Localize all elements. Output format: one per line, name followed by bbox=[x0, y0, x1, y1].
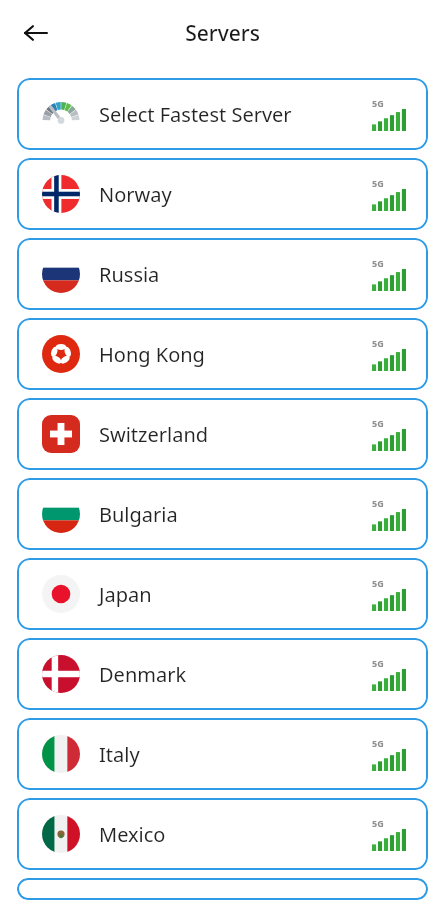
button[interactable]: Denmark bbox=[17, 638, 428, 710]
staticText: Select Fastest Server bbox=[99, 101, 372, 128]
staticText: Servers bbox=[185, 19, 260, 48]
button[interactable]: Italy bbox=[17, 718, 428, 790]
staticText: Hong Kong bbox=[99, 341, 372, 368]
staticText: 5G bbox=[372, 257, 384, 269]
staticText: 5G bbox=[372, 497, 384, 509]
button[interactable]: Russia bbox=[17, 238, 428, 310]
button[interactable]: Norway bbox=[17, 158, 428, 230]
staticText: Japan bbox=[99, 581, 372, 608]
staticText: 5G bbox=[372, 657, 384, 669]
staticText: Norway bbox=[99, 181, 372, 208]
button[interactable]: Select Fastest Server bbox=[17, 78, 428, 150]
staticText: Switzerland bbox=[99, 421, 372, 448]
staticText: 5G bbox=[372, 177, 384, 189]
button[interactable]: Japan bbox=[17, 558, 428, 630]
staticText: Mexico bbox=[99, 821, 372, 848]
staticText: Denmark bbox=[99, 661, 372, 688]
button[interactable]: Switzerland bbox=[17, 398, 428, 470]
staticText: Italy bbox=[99, 741, 372, 768]
staticText: 5G bbox=[372, 417, 384, 429]
button[interactable]: Bulgaria bbox=[17, 478, 428, 550]
button[interactable]: Mexico bbox=[17, 798, 428, 870]
staticText: 5G bbox=[372, 97, 384, 109]
button[interactable]: Back bbox=[14, 11, 58, 55]
button[interactable] bbox=[17, 878, 428, 900]
staticText: 5G bbox=[372, 577, 384, 589]
staticText: 5G bbox=[372, 337, 384, 349]
staticText: 5G bbox=[372, 817, 384, 829]
staticText: 5G bbox=[372, 737, 384, 749]
staticText: Russia bbox=[99, 261, 372, 288]
button[interactable]: Hong Kong bbox=[17, 318, 428, 390]
staticText: Bulgaria bbox=[99, 501, 372, 528]
